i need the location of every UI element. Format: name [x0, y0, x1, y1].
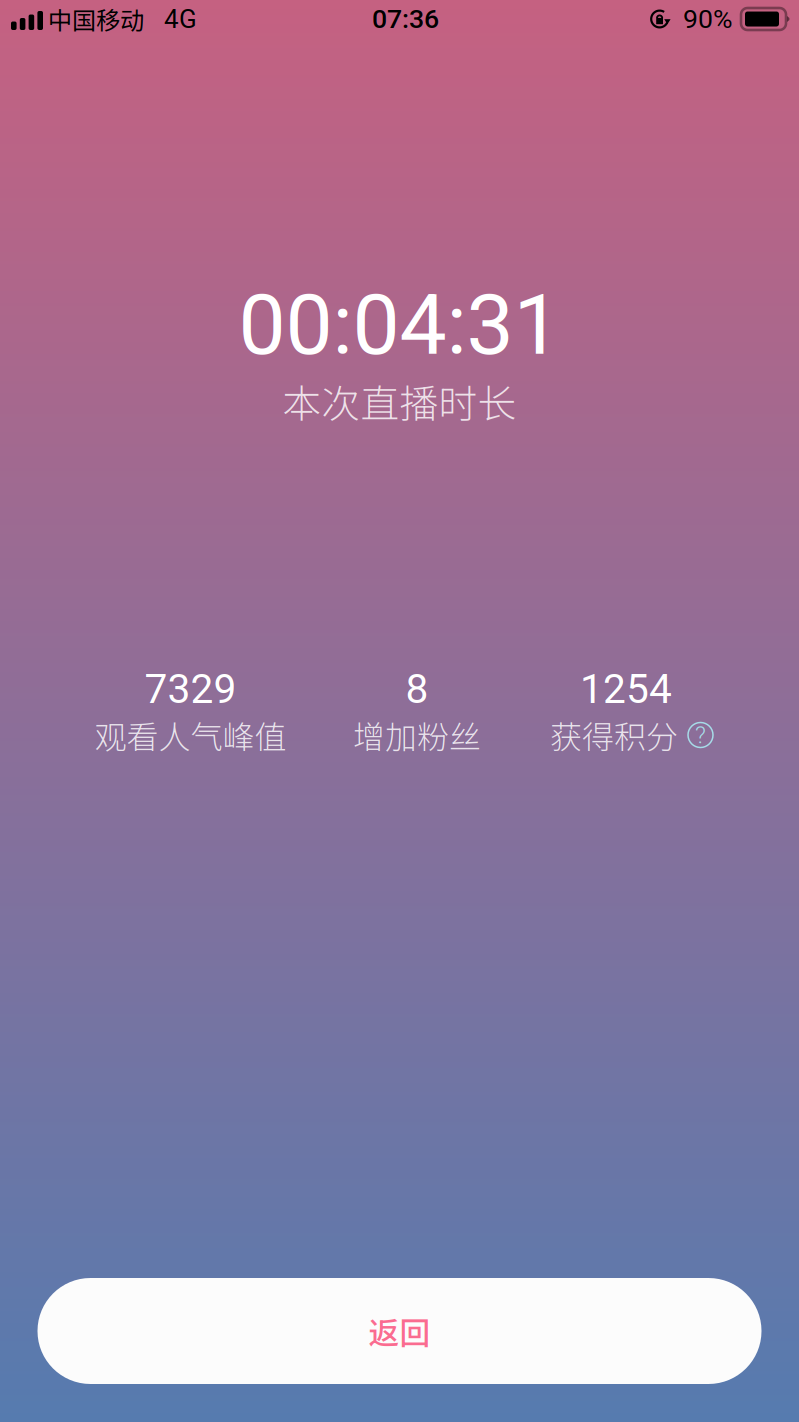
staticText: 返回	[368, 1309, 430, 1353]
staticText: 07:36	[372, 3, 439, 35]
staticText: 1254	[580, 665, 672, 713]
staticText: 本次直播时长	[282, 373, 516, 429]
staticText: 7329	[144, 665, 236, 713]
staticText: 观看人气峰值	[94, 712, 286, 758]
staticText: 4G	[164, 4, 197, 34]
staticText: 8	[405, 665, 428, 713]
staticText: 增加粉丝	[353, 712, 481, 758]
staticText: ?	[695, 721, 706, 749]
button[interactable]: 返回	[37, 1278, 761, 1384]
staticText: 90%	[683, 3, 733, 35]
staticText: 获得积分	[550, 712, 678, 758]
button[interactable]: 关于获得积分	[688, 722, 713, 747]
staticText: 00:04:31	[238, 276, 560, 374]
staticText: 中国移动	[48, 1, 144, 36]
